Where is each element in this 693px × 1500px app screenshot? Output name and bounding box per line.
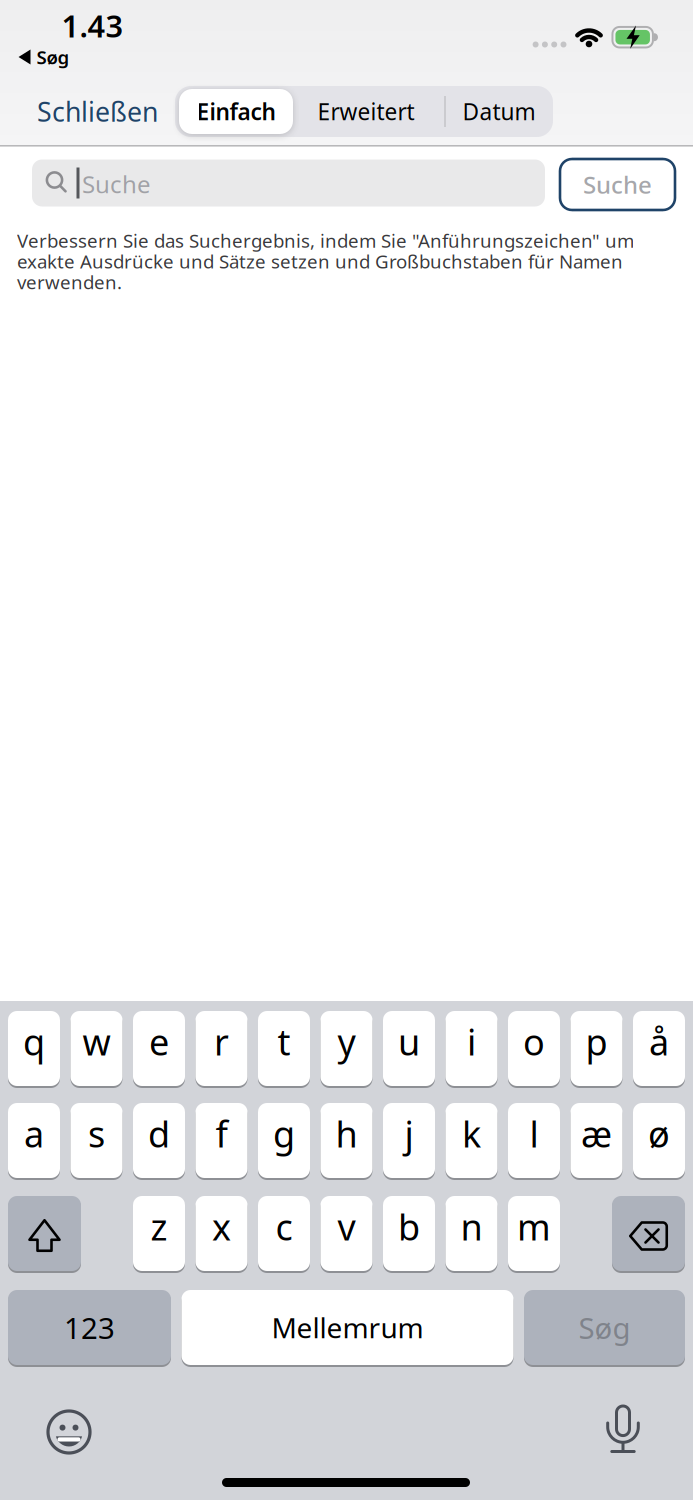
staticText: Einfach — [196, 96, 275, 126]
button[interactable]: z — [133, 1196, 185, 1271]
staticText: Søg — [578, 1308, 630, 1347]
button[interactable]: Tilbage til Søg — [18, 45, 69, 69]
button[interactable]: e — [133, 1011, 185, 1086]
button[interactable]: p — [570, 1011, 622, 1086]
button[interactable]: a — [8, 1103, 60, 1178]
button[interactable]: x — [195, 1196, 247, 1271]
button[interactable]: Schließen — [37, 94, 158, 129]
staticText: k — [462, 1110, 481, 1157]
staticText: b — [398, 1203, 420, 1250]
button[interactable]: j — [383, 1103, 435, 1178]
button[interactable]: c — [258, 1196, 310, 1271]
staticText: 1.43 — [61, 5, 123, 46]
staticText: m — [517, 1203, 551, 1250]
staticText: l — [529, 1110, 538, 1157]
staticText: æ — [581, 1110, 612, 1157]
staticText: Suche — [82, 168, 151, 200]
button[interactable]: Suche — [32, 159, 545, 206]
staticText: a — [24, 1110, 44, 1157]
staticText: z — [150, 1203, 167, 1250]
button[interactable]: æ — [570, 1103, 622, 1178]
button[interactable]: Diktering — [601, 1404, 645, 1456]
staticText: d — [148, 1110, 170, 1157]
staticText: s — [88, 1110, 105, 1157]
button[interactable]: Søg — [524, 1290, 685, 1365]
button[interactable]: y — [320, 1011, 372, 1086]
button[interactable]: Suche — [560, 159, 675, 210]
staticText: f — [215, 1110, 227, 1157]
staticText: å — [649, 1018, 669, 1065]
button[interactable]: l — [508, 1103, 560, 1178]
button[interactable]: Löschen — [612, 1196, 685, 1271]
button[interactable]: å — [633, 1011, 685, 1086]
button[interactable]: k — [445, 1103, 497, 1178]
button[interactable]: i — [445, 1011, 497, 1086]
staticText: 123 — [64, 1308, 115, 1347]
staticText: y — [337, 1018, 355, 1065]
staticText: o — [523, 1018, 545, 1065]
button[interactable]: t — [258, 1011, 310, 1086]
staticText: Schließen — [37, 94, 158, 129]
button[interactable]: ø — [633, 1103, 685, 1178]
staticText: q — [23, 1018, 45, 1065]
staticText: Verbessern Sie das Suchergebnis, indem S… — [17, 228, 634, 253]
staticText: Søg — [36, 45, 69, 69]
button[interactable]: Emoji — [44, 1407, 94, 1457]
staticText: c — [275, 1203, 292, 1250]
staticText: x — [212, 1203, 231, 1250]
button[interactable]: g — [258, 1103, 310, 1178]
button[interactable]: q — [8, 1011, 60, 1086]
button[interactable]: r — [195, 1011, 247, 1086]
button[interactable]: Einfach — [179, 89, 293, 134]
button[interactable]: f — [195, 1103, 247, 1178]
button[interactable]: Datum — [449, 89, 549, 134]
staticText: i — [467, 1018, 476, 1065]
staticText: p — [585, 1018, 607, 1065]
staticText: v — [337, 1203, 355, 1250]
button[interactable]: u — [383, 1011, 435, 1086]
staticText: Erweitert — [317, 96, 414, 126]
staticText: n — [460, 1203, 482, 1250]
button[interactable]: h — [320, 1103, 372, 1178]
staticText: u — [398, 1018, 420, 1065]
button[interactable]: v — [320, 1196, 372, 1271]
staticText: h — [335, 1110, 357, 1157]
button[interactable]: Umschalttaste — [8, 1196, 81, 1271]
staticText: Mellemrum — [271, 1309, 423, 1346]
staticText: ø — [648, 1110, 670, 1157]
button[interactable]: d — [133, 1103, 185, 1178]
staticText: t — [277, 1018, 290, 1065]
button[interactable]: s — [70, 1103, 122, 1178]
button[interactable]: Mellemrum — [181, 1290, 513, 1365]
button[interactable]: n — [445, 1196, 497, 1271]
button[interactable]: m — [508, 1196, 560, 1271]
button[interactable]: w — [70, 1011, 122, 1086]
staticText: verwenden. — [17, 270, 122, 294]
staticText: g — [273, 1110, 295, 1157]
staticText: w — [82, 1018, 110, 1065]
button[interactable]: b — [383, 1196, 435, 1271]
staticText: r — [214, 1018, 229, 1065]
staticText: j — [404, 1110, 413, 1157]
staticText: exakte Ausdrücke und Sätze setzen und Gr… — [17, 249, 623, 274]
staticText: Datum — [462, 96, 535, 126]
staticText: e — [149, 1018, 169, 1065]
button[interactable]: Erweitert — [296, 89, 436, 134]
button[interactable]: 123 — [8, 1290, 171, 1365]
staticText: Suche — [583, 169, 652, 200]
button[interactable]: o — [508, 1011, 560, 1086]
